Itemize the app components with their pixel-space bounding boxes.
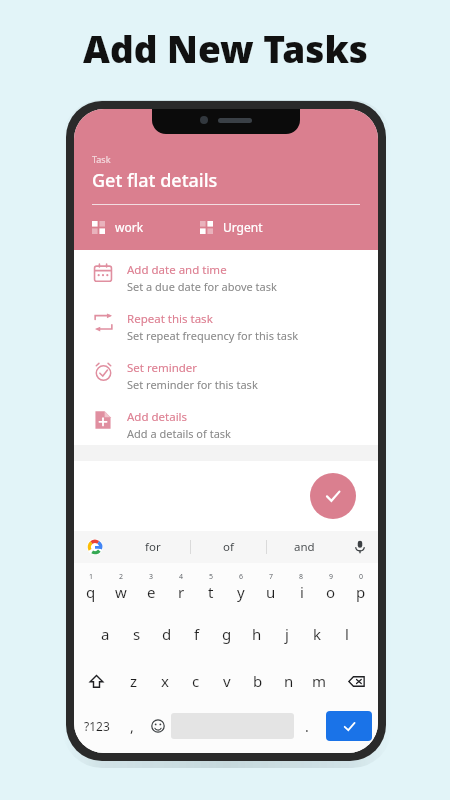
button[interactable]: Save task [310, 473, 356, 519]
button[interactable]: Set reminder [74, 360, 378, 392]
staticText: Add a details of task [127, 426, 231, 441]
staticText: x [161, 671, 169, 691]
button[interactable]: Backspace [335, 657, 378, 705]
button[interactable]: 5 [196, 563, 226, 610]
staticText: . [305, 717, 309, 736]
staticText: Urgent [223, 219, 263, 235]
button[interactable]: 3 [136, 563, 166, 610]
staticText: q [86, 582, 96, 602]
staticText: h [252, 624, 262, 644]
button[interactable]: m [304, 657, 335, 705]
staticText: g [222, 624, 232, 644]
button[interactable]: j [272, 610, 302, 657]
staticText: and [294, 539, 315, 555]
staticText: b [253, 671, 263, 691]
staticText: 8 [299, 572, 304, 582]
staticText: s [133, 624, 141, 644]
button[interactable]: 8 [286, 563, 316, 610]
button[interactable]: Enter [326, 711, 372, 741]
button[interactable]: Repeat this task [74, 311, 378, 343]
staticText: d [162, 624, 172, 644]
staticText: 6 [239, 572, 244, 582]
button[interactable]: v [211, 657, 242, 705]
button[interactable]: a [90, 610, 121, 657]
button[interactable]: c [180, 657, 211, 705]
staticText: Set reminder for this task [127, 377, 258, 392]
button[interactable]: , [119, 705, 145, 747]
staticText: v [223, 671, 231, 691]
button[interactable]: 0 [346, 563, 376, 610]
staticText: 0 [359, 572, 364, 582]
staticText: 5 [209, 572, 214, 582]
button[interactable]: Emoji [145, 705, 171, 747]
staticText: , [130, 717, 134, 736]
staticText: r [178, 582, 185, 602]
button[interactable]: Shift [74, 657, 118, 705]
staticText: 9 [329, 572, 334, 582]
staticText: 1 [89, 572, 94, 582]
staticText: y [237, 582, 245, 602]
staticText: 4 [179, 572, 184, 582]
button[interactable]: of [191, 531, 266, 563]
button[interactable]: 6 [226, 563, 256, 610]
staticText: p [356, 582, 366, 602]
staticText: o [326, 582, 336, 602]
staticText: f [194, 624, 200, 644]
button[interactable]: Urgent [200, 217, 263, 237]
staticText: i [300, 582, 304, 602]
staticText: l [345, 624, 349, 644]
button[interactable]: and [267, 531, 342, 563]
button[interactable]: 2 [106, 563, 136, 610]
staticText: w [115, 582, 127, 602]
staticText: Set repeat frequency for this task [127, 328, 299, 343]
button[interactable]: work [92, 217, 200, 237]
button[interactable]: Google [74, 531, 116, 563]
button[interactable]: Add date and time [74, 262, 378, 294]
button[interactable]: Add details [74, 409, 378, 441]
staticText: Set a due date for above task [127, 279, 277, 294]
staticText: Task [92, 153, 111, 165]
staticText: t [208, 582, 214, 602]
button[interactable]: ?123 [74, 705, 119, 747]
button[interactable]: 1 [76, 563, 106, 610]
staticText: Add New Tasks [83, 23, 368, 73]
button[interactable]: 9 [316, 563, 346, 610]
button[interactable]: x [149, 657, 180, 705]
button[interactable]: g [212, 610, 242, 657]
staticText: m [312, 671, 327, 691]
button[interactable]: k [302, 610, 332, 657]
button[interactable]: z [118, 657, 149, 705]
staticText: Set reminder [127, 360, 198, 376]
staticText: 3 [149, 572, 154, 582]
button[interactable]: f [182, 610, 212, 657]
staticText: k [313, 624, 322, 644]
staticText: Get flat details [92, 168, 218, 193]
staticText: Add details [127, 409, 188, 425]
staticText: ?123 [84, 718, 110, 734]
staticText: e [147, 582, 156, 602]
staticText: 7 [269, 572, 274, 582]
staticText: work [115, 219, 144, 235]
staticText: Add date and time [127, 262, 227, 278]
button[interactable]: 7 [256, 563, 286, 610]
button[interactable]: n [273, 657, 304, 705]
button[interactable]: l [332, 610, 362, 657]
button[interactable]: s [121, 610, 152, 657]
button[interactable]: . [294, 705, 320, 747]
staticText: Repeat this task [127, 311, 213, 327]
button[interactable]: h [242, 610, 272, 657]
button[interactable]: 4 [166, 563, 196, 610]
staticText: u [266, 582, 276, 602]
staticText: of [223, 539, 234, 555]
staticText: c [192, 671, 200, 691]
staticText: z [130, 671, 138, 691]
button[interactable]: b [242, 657, 273, 705]
button[interactable]: Voice input [342, 531, 378, 563]
staticText: 2 [119, 572, 124, 582]
button[interactable]: for [116, 531, 190, 563]
staticText: for [145, 539, 161, 555]
staticText: a [101, 624, 110, 644]
button[interactable]: d [152, 610, 182, 657]
staticText: j [285, 624, 289, 644]
